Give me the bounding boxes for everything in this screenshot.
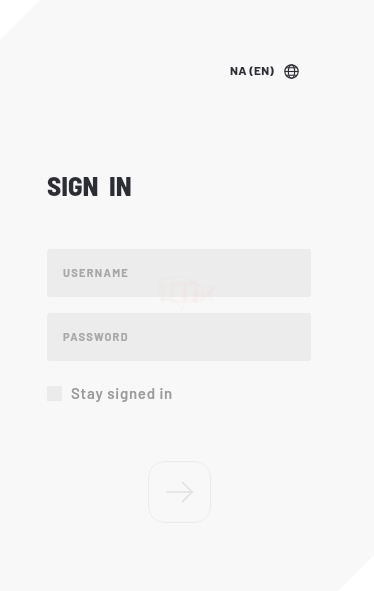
staticText: PASSWORD	[63, 330, 129, 343]
button[interactable]: Stay signed in	[47, 384, 174, 402]
staticText: USERNAME	[63, 266, 130, 279]
button[interactable]: PASSWORD	[47, 313, 311, 361]
staticText: SIGN	[47, 169, 99, 201]
staticText: Stay signed in	[71, 384, 174, 402]
button[interactable]: Sign in	[148, 461, 211, 523]
staticText: IN	[109, 169, 132, 201]
staticText: NA (EN)	[230, 63, 275, 77]
button[interactable]: NA (EN)	[226, 57, 303, 82]
button[interactable]: USERNAME	[47, 249, 311, 297]
